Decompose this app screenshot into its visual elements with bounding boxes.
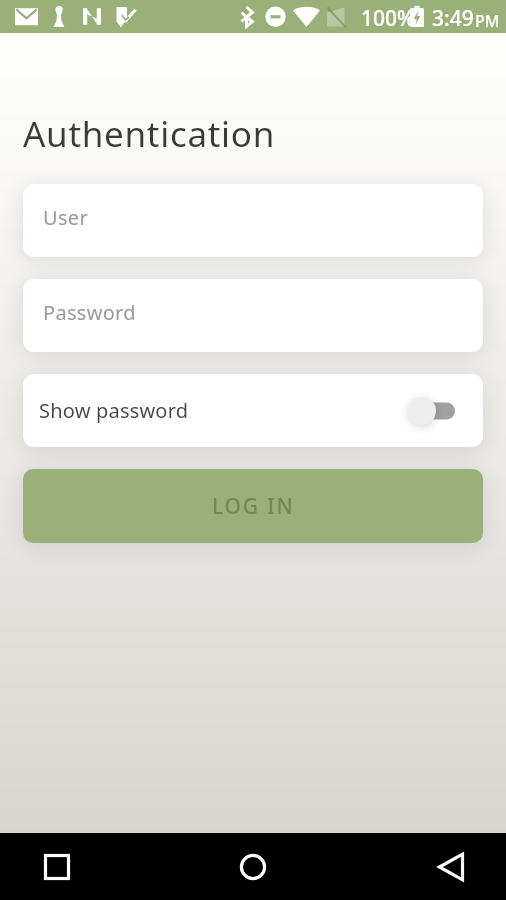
- staticText: 100%: [361, 4, 415, 33]
- staticText: PM: [475, 10, 500, 32]
- button[interactable]: Back: [428, 844, 474, 890]
- staticText: Authentication: [23, 110, 276, 158]
- staticText: User: [43, 204, 88, 231]
- button[interactable]: Show password: [23, 374, 483, 447]
- button[interactable]: Recent apps: [34, 844, 80, 890]
- staticText: Password: [43, 299, 136, 326]
- staticText: Show password: [39, 397, 189, 424]
- button[interactable]: LOG IN: [23, 469, 483, 543]
- staticText: 3:49: [432, 4, 474, 33]
- button[interactable]: User: [23, 184, 483, 257]
- button[interactable]: Password: [23, 279, 483, 352]
- button[interactable]: Home: [230, 844, 276, 890]
- staticText: LOG IN: [212, 492, 295, 521]
